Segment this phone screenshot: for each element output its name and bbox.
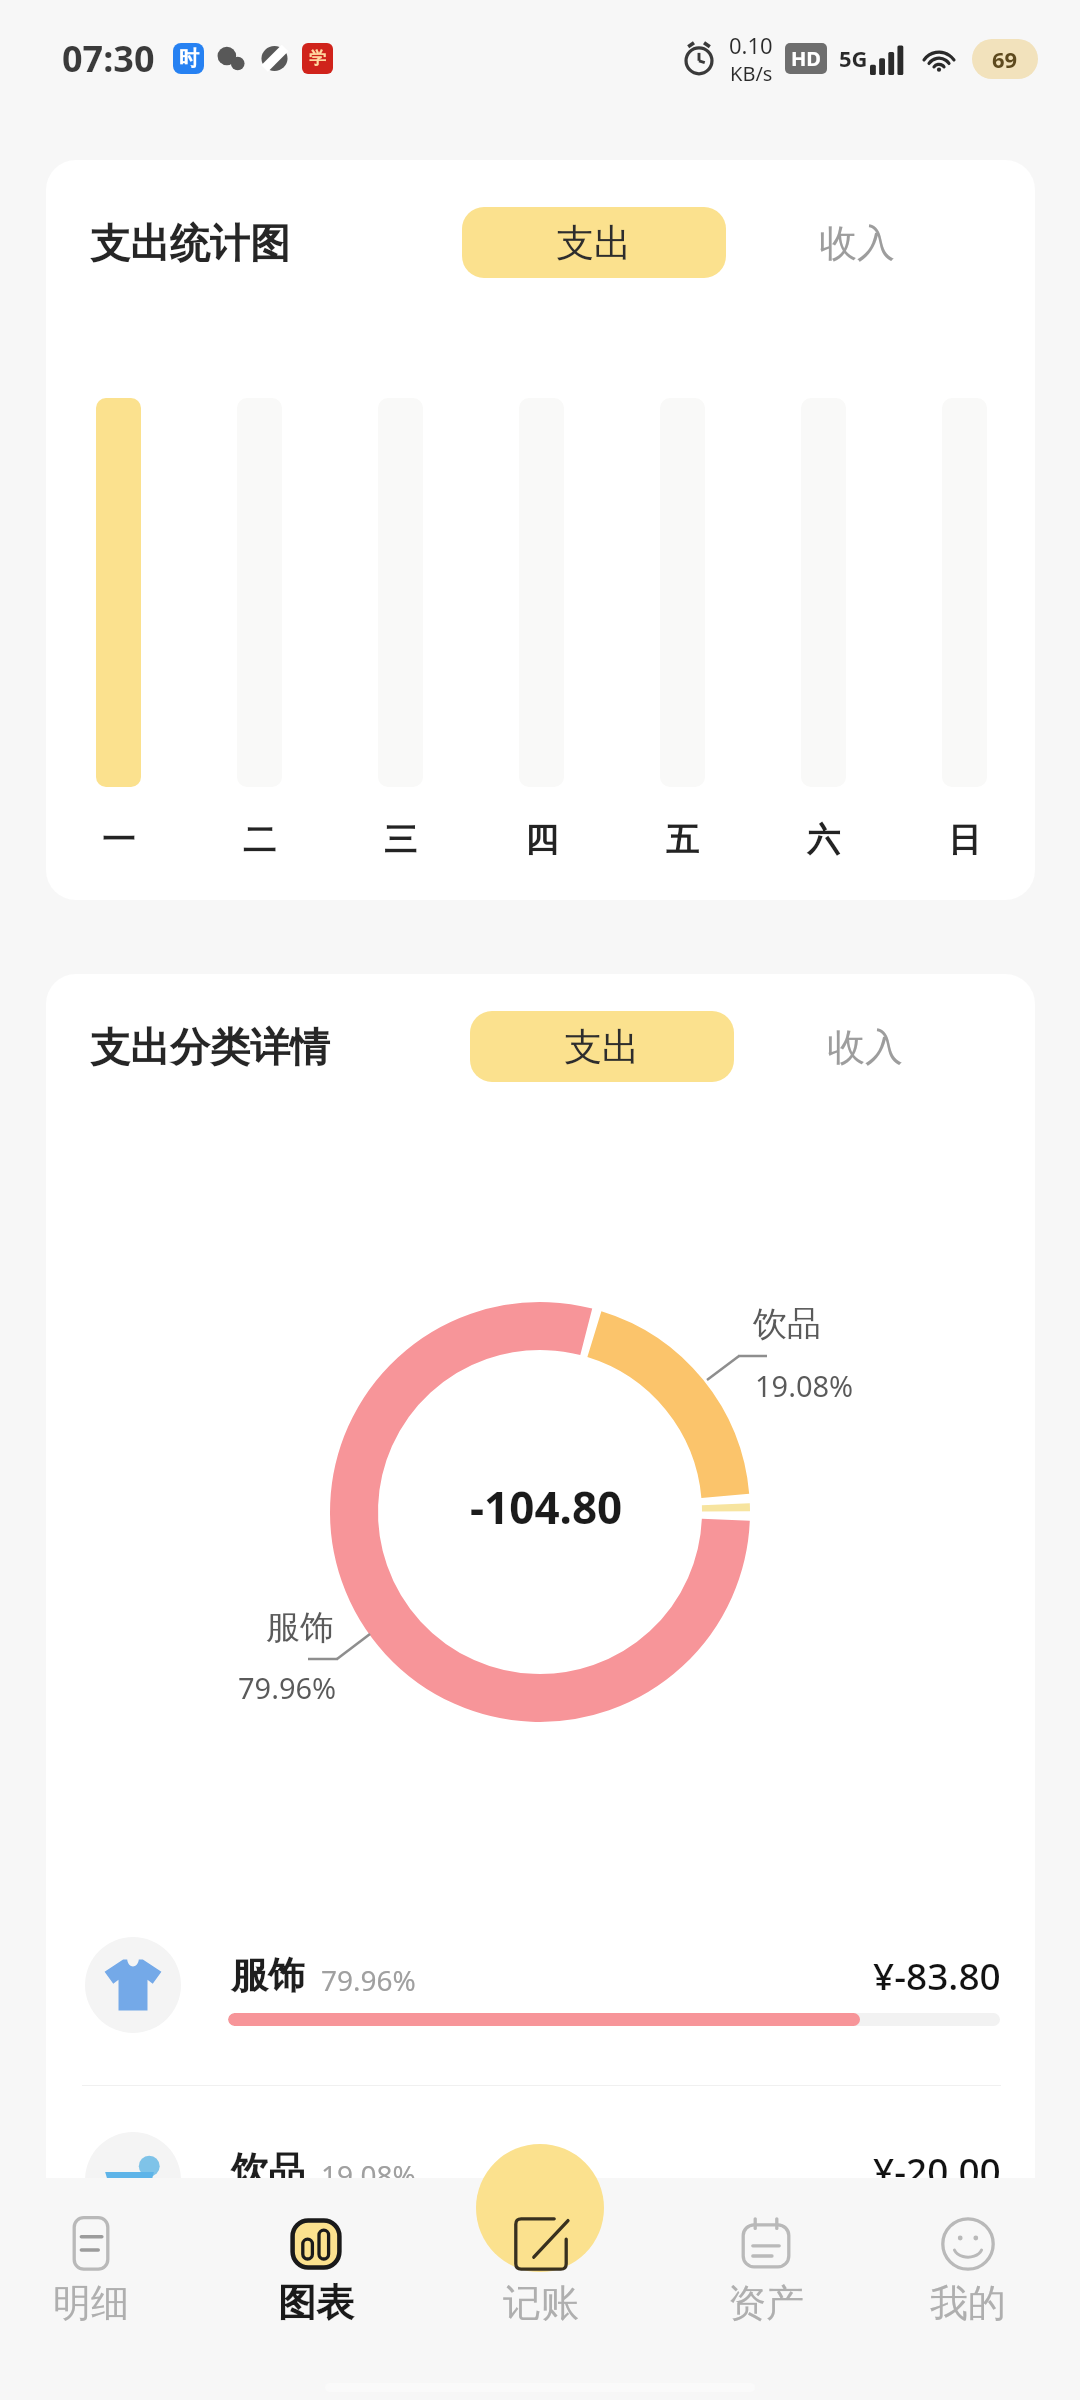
- button[interactable]: 收入: [797, 207, 917, 278]
- staticText: 时: [179, 46, 199, 71]
- staticText: 明细: [53, 2279, 129, 2327]
- other: 我的: [938, 2214, 998, 2274]
- staticText: HD: [791, 45, 821, 72]
- staticText: 一: [102, 819, 135, 861]
- button[interactable]: 记账: [428, 2214, 653, 2327]
- button[interactable]: 明细: [0, 2214, 203, 2327]
- staticText: 0.10: [729, 30, 773, 60]
- staticText: 79.96%: [321, 1961, 416, 1999]
- staticText: 07:30: [62, 34, 155, 83]
- staticText: ¥-83.80: [873, 1950, 1001, 2000]
- staticText: 资产: [728, 2279, 804, 2327]
- other: 记账: [511, 2214, 571, 2274]
- button[interactable]: 图表: [203, 2214, 428, 2327]
- button[interactable]: 资产: [653, 2214, 878, 2327]
- button[interactable]: 我的: [878, 2214, 1058, 2327]
- staticText: -104.80: [470, 1477, 623, 1537]
- button[interactable]: 饮品: [46, 2100, 1035, 2280]
- staticText: 收入: [827, 1023, 903, 1071]
- staticText: 五: [666, 819, 699, 861]
- other: 明细: [61, 2214, 121, 2274]
- staticText: 19.08%: [755, 1366, 854, 1405]
- staticText: 支出: [556, 219, 632, 267]
- button[interactable]: 收入: [805, 1011, 925, 1082]
- other: 图表: [286, 2214, 346, 2274]
- staticText: 饮品: [231, 2147, 305, 2194]
- staticText: 69: [992, 44, 1018, 74]
- staticText: 饮品: [753, 1302, 821, 1345]
- staticText: 19.08%: [321, 2156, 416, 2194]
- staticText: 记账: [503, 2279, 579, 2327]
- staticText: 二: [243, 819, 276, 861]
- staticText: 日: [948, 819, 981, 861]
- button[interactable]: 服饰: [46, 1905, 1035, 2085]
- staticText: 支出分类详情: [90, 1022, 330, 1072]
- staticText: 六: [807, 819, 840, 861]
- staticText: 支出统计图: [90, 218, 290, 268]
- staticText: 四: [525, 819, 558, 861]
- staticText: 图表: [278, 2279, 354, 2327]
- staticText: 学: [309, 48, 326, 69]
- staticText: 我的: [930, 2279, 1006, 2327]
- button[interactable]: 支出: [470, 1011, 734, 1082]
- other: 资产: [736, 2214, 796, 2274]
- staticText: 服饰: [266, 1606, 334, 1649]
- staticText: KB/s: [730, 60, 773, 87]
- staticText: 5G: [839, 43, 868, 73]
- staticText: 三: [384, 819, 417, 861]
- button[interactable]: 记账: [476, 2144, 604, 2272]
- button[interactable]: 支出: [462, 207, 726, 278]
- staticText: 收入: [819, 219, 895, 267]
- staticText: 79.96%: [238, 1668, 337, 1707]
- staticText: 服饰: [231, 1952, 305, 1999]
- staticText: ¥-20.00: [873, 2145, 1001, 2195]
- staticText: 支出: [564, 1023, 640, 1071]
